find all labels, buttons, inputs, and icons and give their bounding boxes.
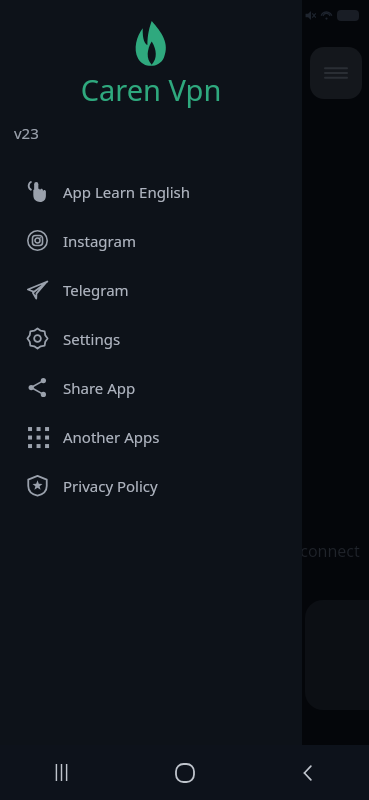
- button[interactable]: Share App: [0, 363, 302, 412]
- button[interactable]: Home: [123, 745, 246, 800]
- staticText: Instagram: [63, 231, 136, 251]
- button[interactable]: Recents: [0, 745, 123, 800]
- staticText: Settings: [63, 329, 121, 349]
- staticText: Telegram: [63, 280, 129, 300]
- staticText: Privacy Policy: [63, 476, 158, 496]
- button[interactable]: Back: [246, 745, 369, 800]
- button[interactable]: Another Apps: [0, 412, 302, 461]
- staticText: Caren Vpn: [0, 70, 302, 109]
- button[interactable]: App Learn English: [0, 167, 302, 216]
- button[interactable]: Settings: [0, 314, 302, 363]
- staticText: Another Apps: [63, 427, 160, 447]
- button[interactable]: Open menu: [310, 47, 362, 99]
- button[interactable]: Telegram: [0, 265, 302, 314]
- staticText: Tap to connect: [250, 540, 360, 562]
- button[interactable]: Instagram: [0, 216, 302, 265]
- staticText: Share App: [63, 378, 136, 398]
- button[interactable]: Privacy Policy: [0, 461, 302, 510]
- staticText: App Learn English: [63, 182, 191, 202]
- staticText: v23: [14, 123, 39, 143]
